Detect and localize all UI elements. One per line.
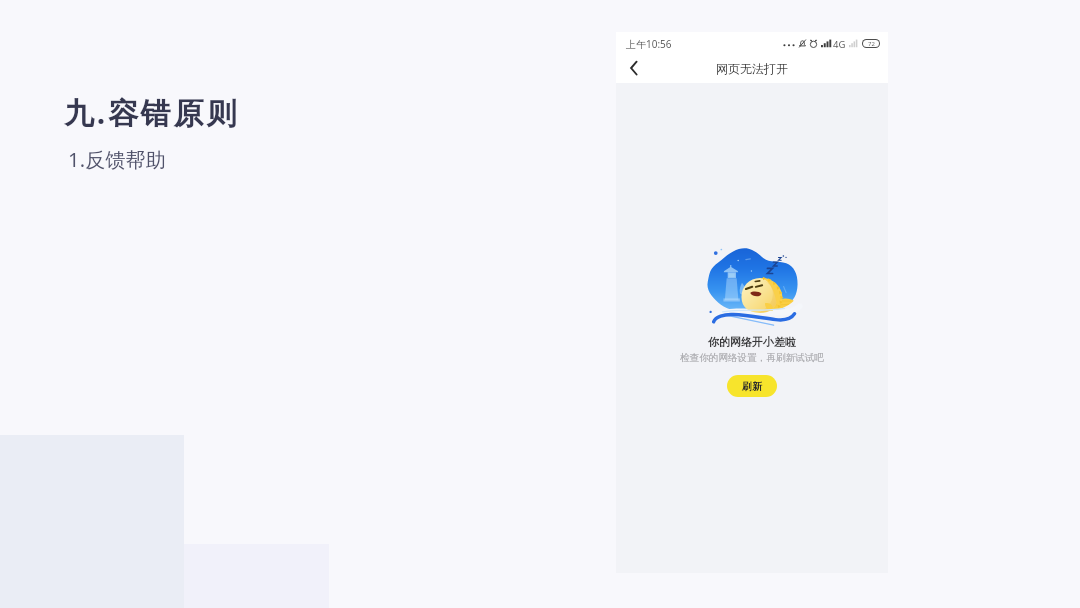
staticText: 4G xyxy=(833,38,846,49)
staticText: 你的网络开小差啦 xyxy=(708,335,796,349)
staticText: 检查你的网络设置，再刷新试试吧 xyxy=(680,352,824,364)
button[interactable]: 刷新 xyxy=(727,375,777,397)
staticText: 网页无法打开 xyxy=(716,61,788,76)
other: Sleeping fish network error illustration xyxy=(703,246,805,324)
staticText: 1.反馈帮助 xyxy=(68,146,166,173)
staticText: 九.容错原则 xyxy=(64,92,240,133)
staticText: 刷新 xyxy=(742,380,762,393)
button[interactable]: Back xyxy=(624,57,644,77)
other: Status icons: silent, alarm, signal 4G, … xyxy=(783,38,880,49)
staticText: 上午10:56 xyxy=(626,37,672,51)
staticText: 72 xyxy=(868,40,875,47)
